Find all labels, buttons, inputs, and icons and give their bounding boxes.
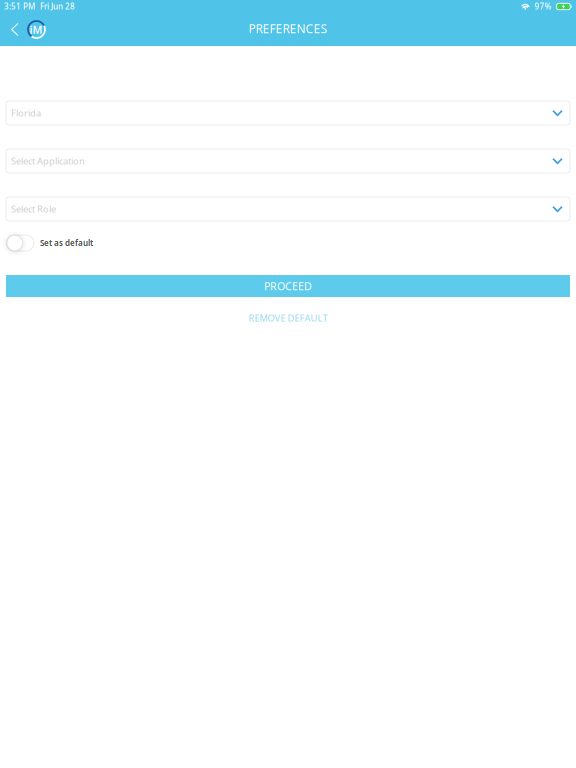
staticText: Select Application [11, 155, 85, 167]
button[interactable]: PROCEED [6, 275, 570, 297]
staticText: PREFERENCES [248, 20, 327, 36]
button[interactable]: Florida [6, 101, 570, 125]
button[interactable]: Select Role [6, 197, 570, 221]
staticText: REMOVE DEFAULT [248, 312, 327, 324]
button[interactable]: REMOVE DEFAULT [6, 309, 570, 327]
staticText: Select Role [11, 203, 56, 215]
staticText: Set as default [40, 238, 93, 248]
staticText: Florida [11, 107, 41, 119]
staticText: 97% [535, 1, 552, 12]
staticText: 3:51 PM [4, 1, 35, 12]
staticText: iM [29, 22, 42, 37]
staticText: Fri Jun 28 [40, 1, 75, 12]
button[interactable]: Select Application [6, 149, 570, 173]
button[interactable]: Back [0, 17, 27, 41]
button[interactable]: Set as default [6, 235, 34, 251]
button[interactable]: Home [27, 20, 46, 39]
staticText: PROCEED [264, 279, 312, 293]
